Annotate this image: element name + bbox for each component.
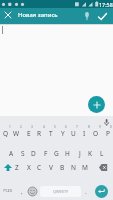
button[interactable]: Y (57, 126, 68, 140)
staticText: O (93, 129, 99, 138)
staticText: P (106, 129, 110, 138)
staticText: H (65, 149, 70, 158)
button[interactable]: A (6, 146, 17, 160)
staticText: Y (61, 129, 65, 138)
staticText: Новая запись (18, 11, 58, 19)
button[interactable] (88, 96, 105, 113)
button[interactable]: L (96, 146, 107, 160)
staticText: W (13, 129, 20, 138)
button[interactable]: H (62, 146, 73, 160)
staticText: I (83, 129, 86, 138)
staticText: S (21, 149, 25, 158)
staticText: 8 (88, 125, 90, 129)
staticText: D (31, 149, 36, 158)
button[interactable] (81, 9, 92, 23)
button[interactable]: T (45, 126, 56, 140)
staticText: 9 (99, 125, 101, 129)
button[interactable]: N (68, 160, 79, 174)
button[interactable]: K (85, 146, 96, 160)
staticText: R (37, 129, 42, 138)
button[interactable]: X (23, 160, 34, 174)
staticText: 0 (110, 125, 112, 129)
staticText: . (85, 188, 87, 196)
staticText: Z (15, 163, 19, 172)
button[interactable]: J (74, 146, 85, 160)
button[interactable] (96, 160, 111, 174)
button[interactable]: B (57, 160, 68, 174)
staticText: Q (3, 129, 9, 138)
staticText: T (49, 129, 53, 138)
staticText: 6 (65, 125, 67, 129)
staticText: G (54, 149, 59, 158)
staticText: A (9, 149, 14, 158)
button[interactable] (2, 8, 13, 21)
staticText: ?123 (3, 188, 13, 194)
staticText: E (27, 129, 31, 138)
button[interactable]: M (79, 160, 90, 174)
staticText: L (100, 149, 104, 158)
button[interactable] (95, 185, 108, 198)
staticText: V (49, 163, 53, 172)
button[interactable] (100, 117, 113, 128)
button[interactable] (1, 160, 14, 174)
staticText: U (71, 129, 76, 138)
button[interactable]: U (68, 126, 79, 140)
button[interactable]: , (16, 185, 27, 199)
button[interactable]: QWERTY (40, 186, 81, 197)
staticText: N (71, 163, 76, 172)
staticText: 2 (20, 125, 22, 129)
button[interactable]: O (90, 126, 101, 140)
staticText: X (27, 163, 31, 172)
button[interactable]: C (34, 160, 45, 174)
staticText: B (60, 163, 65, 172)
button[interactable]: E (23, 126, 34, 140)
button[interactable]: W (11, 126, 22, 140)
staticText: 3 (31, 125, 33, 129)
staticText: K (88, 149, 93, 158)
staticText: QWERTY (53, 189, 69, 194)
button[interactable]: P (102, 126, 113, 140)
staticText: 5 (54, 125, 56, 129)
button[interactable]: S (17, 146, 28, 160)
button[interactable]: . (80, 185, 91, 199)
staticText: M (82, 163, 88, 172)
button[interactable]: G (51, 146, 62, 160)
button[interactable] (26, 185, 38, 198)
button[interactable] (95, 9, 109, 23)
button[interactable]: I (79, 126, 90, 140)
button[interactable]: Z (11, 160, 22, 174)
button[interactable]: D (28, 146, 39, 160)
staticText: 1 (9, 125, 11, 129)
staticText: 7 (76, 125, 78, 129)
button[interactable]: Q (0, 126, 11, 140)
button[interactable]: ?123 (1, 184, 15, 198)
button[interactable]: R (34, 126, 45, 140)
staticText: J (79, 149, 81, 158)
staticText: 4 (43, 125, 45, 129)
staticText: , (21, 188, 23, 196)
staticText: 17:58 (99, 1, 113, 8)
staticText: C (37, 163, 42, 172)
button[interactable]: F (40, 146, 51, 160)
button[interactable]: V (45, 160, 56, 174)
staticText: F (44, 149, 48, 158)
